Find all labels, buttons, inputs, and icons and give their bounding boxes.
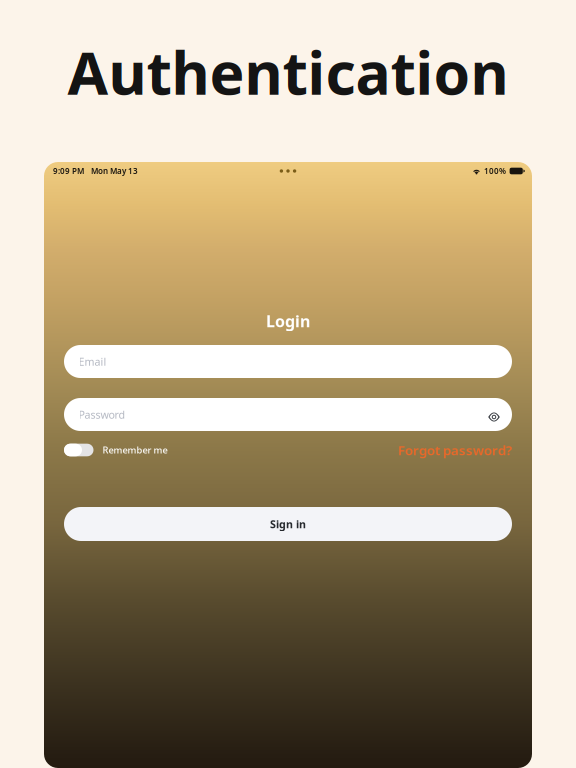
staticText: Email bbox=[78, 354, 106, 369]
staticText: Password bbox=[78, 407, 125, 422]
staticText: Remember me bbox=[102, 444, 167, 456]
staticText: 100% bbox=[484, 166, 506, 176]
staticText: Authentication bbox=[67, 33, 508, 111]
staticText: Forgot password? bbox=[398, 441, 512, 459]
staticText: Mon May 13 bbox=[91, 166, 138, 176]
staticText: Login bbox=[266, 310, 310, 332]
staticText: 9:09 PM bbox=[53, 166, 84, 176]
button[interactable]: Remember me bbox=[64, 444, 167, 456]
button[interactable]: Sign in bbox=[64, 507, 512, 541]
staticText: Sign in bbox=[270, 517, 306, 531]
button[interactable]: Forgot password? bbox=[398, 441, 512, 459]
button[interactable]: Show password bbox=[483, 404, 505, 424]
